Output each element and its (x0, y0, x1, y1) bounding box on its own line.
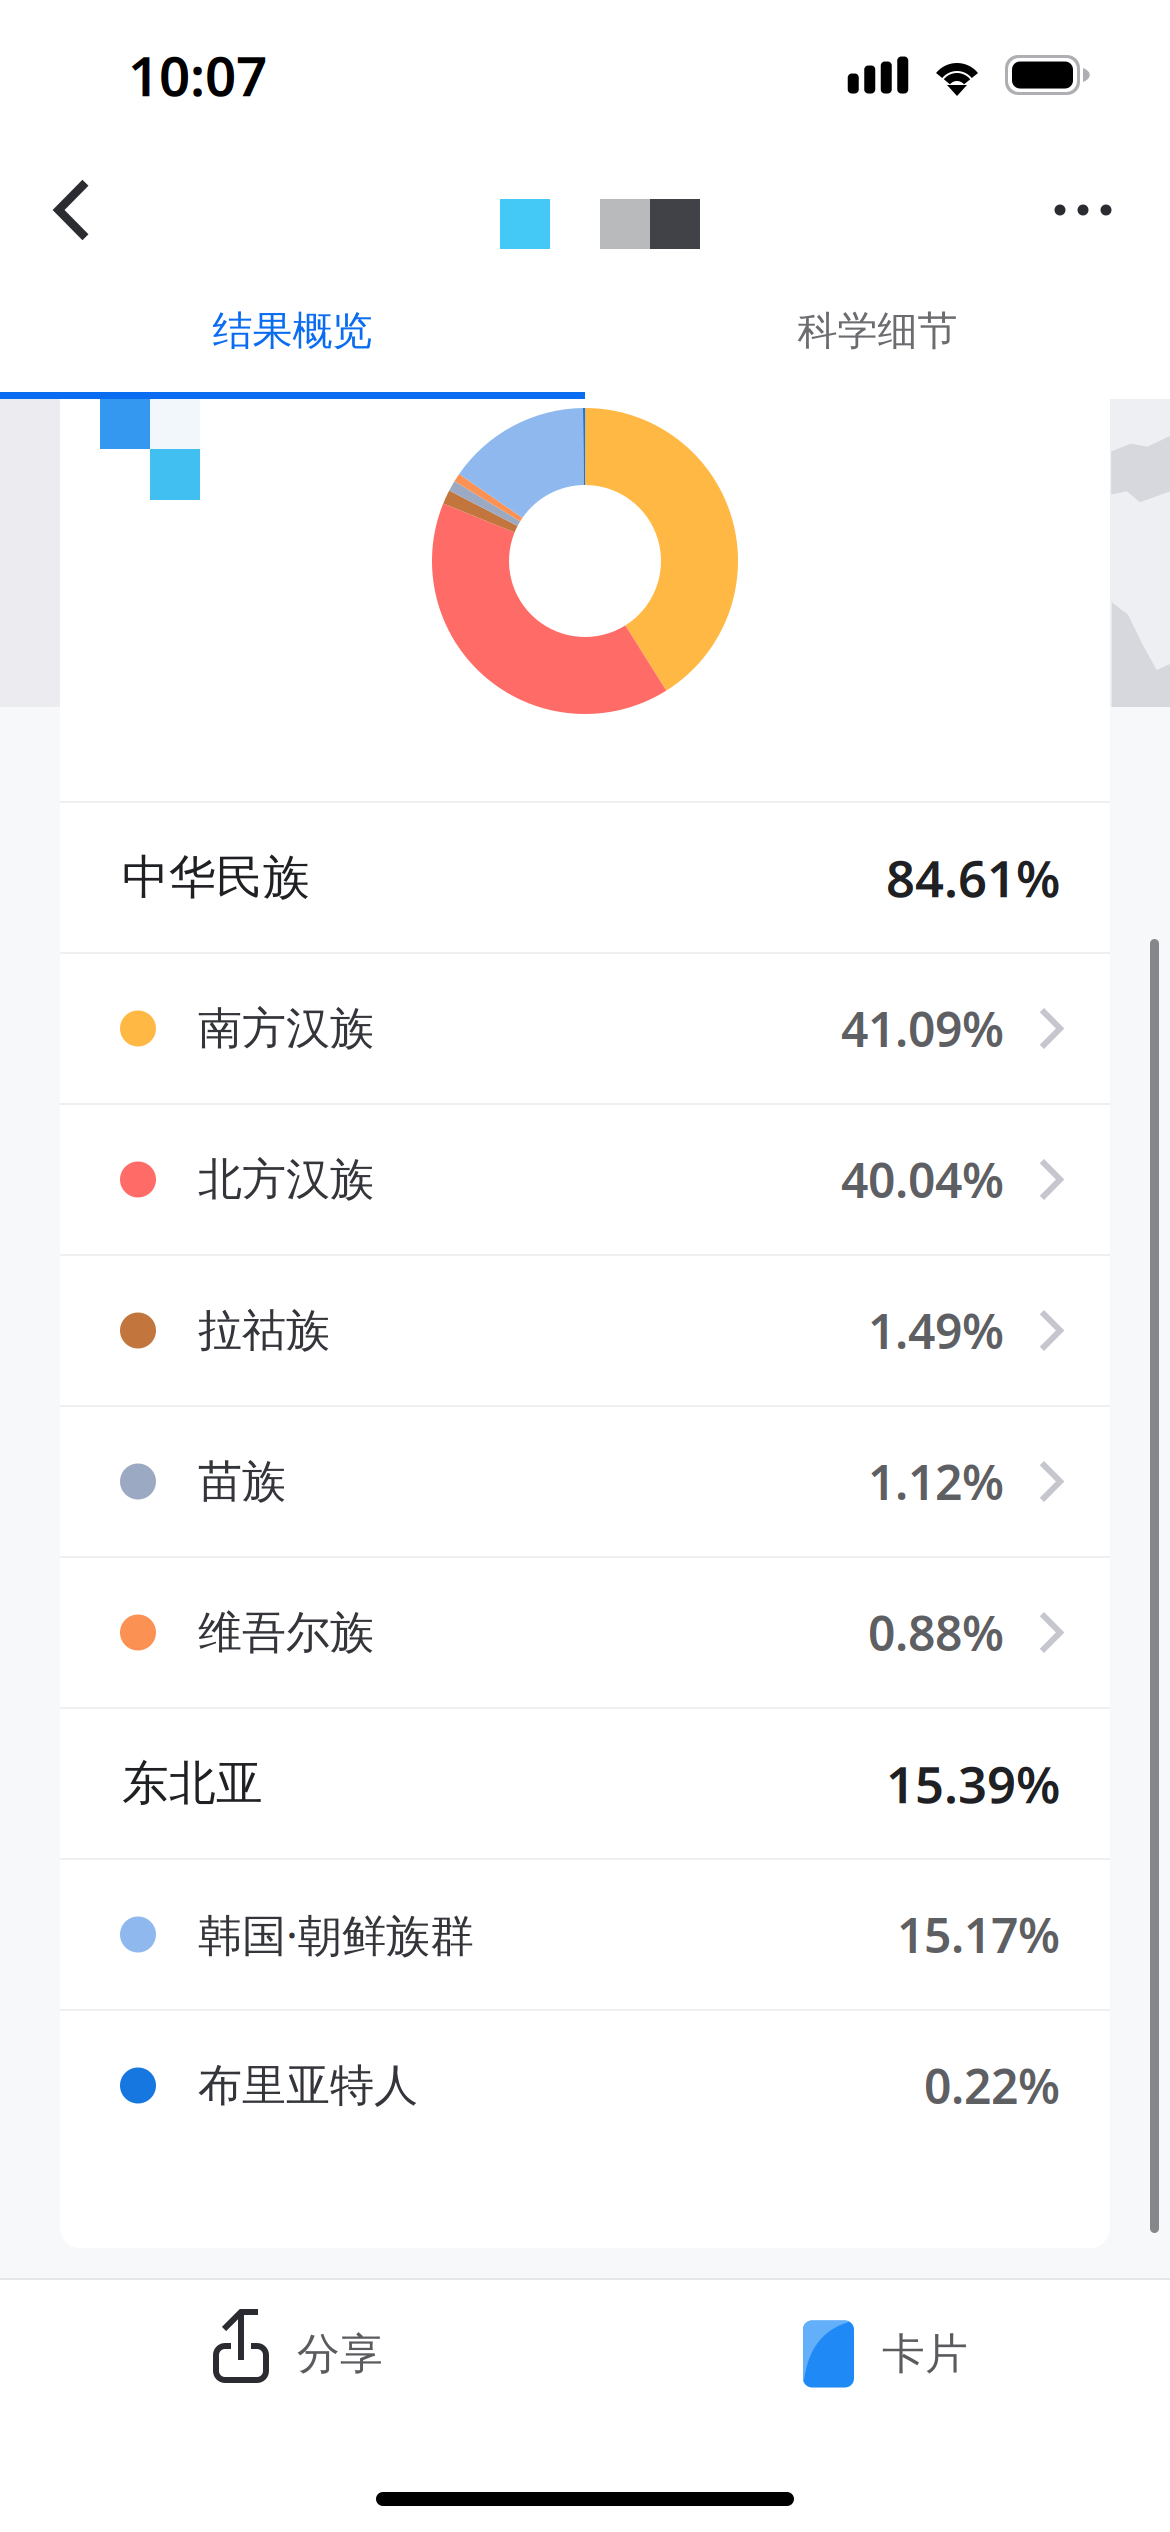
staticText: 84.61% (886, 844, 1060, 911)
button[interactable]: 结果概览 (0, 270, 585, 392)
button[interactable]: 韩国·朝鲜族群 (60, 1860, 1110, 2009)
staticText: 苗族 (198, 1454, 286, 1508)
staticText: 1.49% (868, 1299, 1004, 1362)
button[interactable]: 布里亚特人 (60, 2011, 1110, 2160)
button[interactable]: 南方汉族 (60, 954, 1110, 1103)
staticText: 15.17% (897, 1903, 1060, 1966)
button[interactable]: More (1026, 150, 1140, 270)
button[interactable]: 北方汉族 (60, 1105, 1110, 1254)
staticText: 40.04% (841, 1148, 1004, 1211)
staticText: 卡片 (882, 2328, 968, 2380)
staticText: 1.12% (868, 1450, 1004, 1513)
staticText: 0.22% (924, 2054, 1060, 2117)
button[interactable]: 卡片 (803, 2301, 968, 2407)
button[interactable]: Back (0, 150, 144, 270)
staticText: 拉祜族 (198, 1303, 330, 1357)
staticText: 10:07 (128, 39, 267, 111)
button[interactable]: 苗族 (60, 1407, 1110, 1556)
staticText: 科学细节 (797, 306, 957, 355)
staticText: 15.39% (886, 1750, 1060, 1817)
staticText: 结果概览 (212, 306, 372, 355)
staticText: 布里亚特人 (198, 2058, 418, 2112)
staticText: 南方汉族 (198, 1001, 374, 1055)
staticText: 41.09% (841, 997, 1004, 1060)
button[interactable]: 维吾尔族 (60, 1558, 1110, 1707)
staticText: 0.88% (868, 1601, 1004, 1664)
button[interactable]: 分享 (216, 2301, 383, 2407)
staticText: 维吾尔族 (198, 1605, 374, 1659)
staticText: 中华民族 (122, 849, 310, 906)
staticText: 分享 (297, 2328, 383, 2380)
button[interactable]: 拉祜族 (60, 1256, 1110, 1405)
staticText: 东北亚 (122, 1755, 263, 1812)
staticText: 北方汉族 (198, 1152, 374, 1206)
button[interactable]: 科学细节 (585, 270, 1170, 392)
staticText: 韩国·朝鲜族群 (198, 1905, 474, 1964)
